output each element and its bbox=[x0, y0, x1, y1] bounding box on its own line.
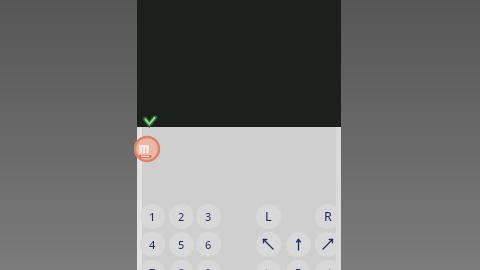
staticText: 6 bbox=[205, 237, 212, 252]
staticText: 4 bbox=[149, 237, 156, 252]
staticText: 8 bbox=[178, 265, 185, 270]
staticText: L bbox=[265, 208, 272, 225]
staticText: 9 bbox=[205, 265, 212, 270]
staticText: 3 bbox=[205, 209, 212, 224]
staticText: 1 bbox=[149, 209, 156, 224]
staticText: 5 bbox=[178, 237, 185, 252]
staticText: 7 bbox=[149, 265, 156, 270]
staticText: E bbox=[295, 265, 302, 270]
staticText: R bbox=[324, 208, 332, 225]
staticText: 2 bbox=[178, 209, 185, 224]
